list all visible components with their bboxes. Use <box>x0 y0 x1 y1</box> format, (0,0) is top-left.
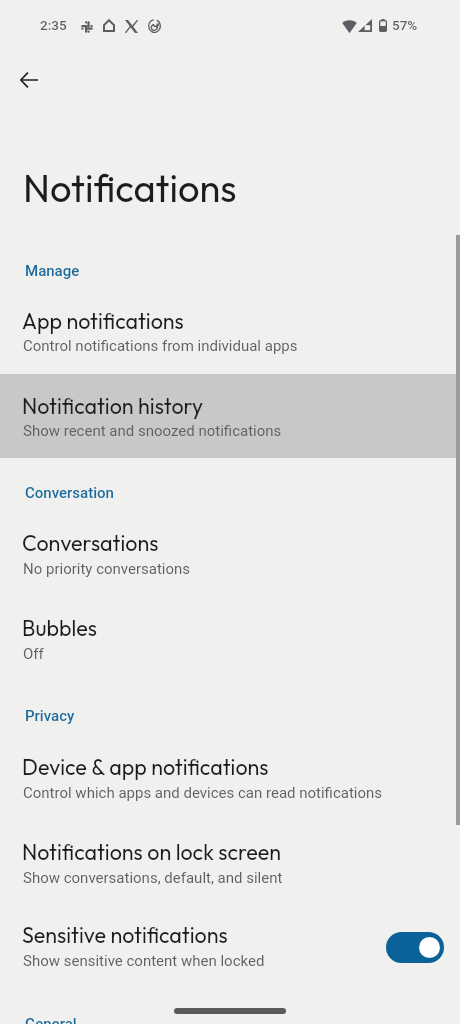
button[interactable]: Sensitive notifications toggle, on <box>386 932 444 963</box>
button[interactable]: Notification history <box>0 374 460 458</box>
staticText: App notifications <box>22 307 184 334</box>
button[interactable]: Notifications on lock screen <box>0 821 460 905</box>
staticText: Sensitive notifications <box>22 921 228 948</box>
staticText: Bubbles <box>22 614 97 641</box>
staticText: 57% <box>392 17 418 33</box>
staticText: Notification history <box>22 392 204 419</box>
staticText: Conversations <box>22 529 159 556</box>
staticText: Show recent and snoozed notifications <box>23 422 282 440</box>
staticText: General <box>25 1015 77 1024</box>
button[interactable]: Device & app notifications <box>0 736 460 820</box>
staticText: Notifications on lock screen <box>22 838 282 865</box>
staticText: Notifications <box>23 164 237 212</box>
staticText: Device & app notifications <box>22 753 269 780</box>
staticText: Control which apps and devices can read … <box>23 784 383 802</box>
staticText: No priority conversations <box>23 560 191 578</box>
staticText: Conversation <box>25 484 114 502</box>
staticText: Show conversations, default, and silent <box>23 869 283 887</box>
staticText: Control notifications from individual ap… <box>23 337 298 355</box>
button[interactable]: Conversations <box>0 512 460 596</box>
button[interactable]: Bubbles <box>0 597 460 681</box>
staticText: Off <box>23 645 44 663</box>
button[interactable]: App notifications <box>0 289 460 373</box>
staticText: Show sensitive content when locked <box>23 952 265 970</box>
button[interactable]: Back <box>5 56 52 103</box>
staticText: 2:35 <box>40 17 67 33</box>
button[interactable]: Sensitive notifications <box>0 904 460 988</box>
staticText: Manage <box>25 262 80 280</box>
staticText: Privacy <box>25 707 75 725</box>
